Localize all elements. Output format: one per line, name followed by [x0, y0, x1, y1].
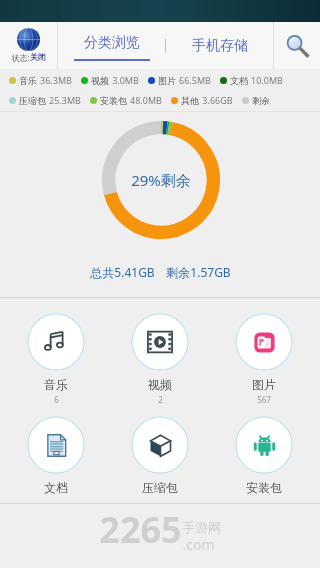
staticText: 视频	[148, 377, 172, 392]
button[interactable]: Search	[274, 22, 320, 69]
button[interactable]: 图片	[216, 312, 312, 406]
staticText: 图片	[158, 75, 176, 86]
button[interactable]: 手机存储	[166, 22, 273, 69]
staticText: 10.0MB	[251, 74, 283, 86]
button[interactable]: FTP status closed	[0, 22, 57, 69]
staticText: 48.0MB	[130, 94, 162, 106]
staticText: 关闭	[30, 52, 46, 62]
button[interactable]: 分类浏览	[58, 22, 165, 69]
staticText: 音乐	[44, 377, 68, 392]
button[interactable]: 安装包	[216, 415, 312, 496]
staticText: 手机存储	[192, 37, 248, 55]
button[interactable]: 音乐	[8, 312, 104, 406]
staticText: 总共5.41GB	[90, 264, 155, 280]
button[interactable]: 文档	[8, 415, 104, 496]
staticText: 剩余1.57GB	[166, 264, 231, 280]
staticText: 文档	[44, 480, 68, 495]
staticText: 压缩包	[19, 95, 46, 106]
staticText: 29%剩余	[131, 170, 191, 190]
staticText: 分类浏览	[84, 34, 140, 52]
staticText: 567	[257, 394, 271, 405]
staticText: 音乐	[19, 75, 37, 86]
staticText: .com	[182, 535, 215, 554]
staticText: 安装包	[246, 480, 282, 495]
staticText: 6	[54, 394, 59, 405]
staticText: 状态:	[11, 52, 30, 63]
button[interactable]: 压缩包	[112, 415, 208, 496]
staticText: 66.5MB	[179, 74, 211, 86]
staticText: 2265	[99, 505, 182, 554]
staticText: 文档	[230, 75, 248, 86]
staticText: 2	[158, 394, 163, 405]
staticText: 其他	[181, 95, 199, 106]
staticText: 手游网	[182, 519, 221, 535]
staticText: 压缩包	[142, 480, 178, 495]
staticText: 3.66GB	[202, 94, 233, 106]
staticText: 安装包	[100, 95, 127, 106]
staticText: 25.3MB	[49, 94, 81, 106]
staticText: 3.0MB	[112, 74, 139, 86]
staticText: 36.3MB	[40, 74, 72, 86]
button[interactable]: 视频	[112, 312, 208, 406]
staticText: 剩余	[252, 95, 270, 106]
staticText: 视频	[91, 75, 109, 86]
staticText: 图片	[252, 377, 276, 392]
